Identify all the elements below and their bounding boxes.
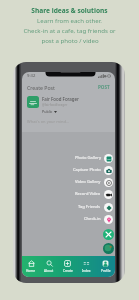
staticText: What's on your mind... [27,119,70,124]
staticText: Photo Gallery [75,155,101,161]
staticText: Capture Photo [73,167,101,173]
button[interactable]: Capture Photo [22,165,113,175]
staticText: Record Video [75,191,101,197]
staticText: Fair Food Forager [42,96,79,102]
button[interactable]: Photo Gallery [22,153,113,163]
staticText: Create [63,269,73,273]
button[interactable]: Fair Food Forager [103,243,114,254]
button[interactable]: Create [58,256,77,277]
button[interactable]: Tag Friends [22,202,113,212]
button[interactable]: Home [22,256,40,277]
staticText: Tag Friends [78,204,101,210]
button[interactable]: Close menu [103,229,114,240]
button[interactable]: Record Video [22,189,113,199]
staticText: @fairfoodforager [42,103,68,107]
staticText: Create Post [27,84,55,91]
staticText: post a photo / video [41,36,99,44]
button[interactable]: Profile [96,256,115,277]
staticText: 9:32 [27,73,36,79]
button[interactable]: About [40,256,58,277]
staticText: Profile [101,269,111,273]
staticText: Learn from each other. [37,16,102,24]
button[interactable]: Index [77,256,96,277]
staticText: About [44,269,54,273]
staticText: Home [26,269,36,273]
button[interactable]: Video Gallery [22,177,113,187]
staticText: Video Gallery [75,179,101,185]
staticText: Share ideas & solutions [31,6,108,15]
staticText: POST [98,84,110,90]
staticText: Check-in [84,216,101,222]
staticText: Check-in at a cafe, tag friends or [23,26,116,34]
button[interactable]: Check-in [22,214,113,224]
staticText: Public [42,109,53,114]
staticText: Index [82,269,91,273]
